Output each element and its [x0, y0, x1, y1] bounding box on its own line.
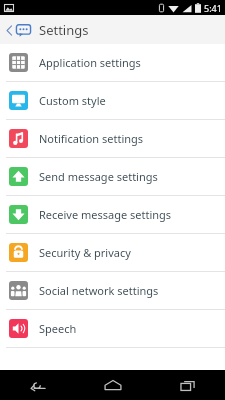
button[interactable]: Back: [0, 370, 75, 400]
staticText: Settings: [39, 21, 89, 39]
button[interactable]: Back: [0, 21, 225, 39]
button[interactable]: Application settings: [0, 44, 225, 81]
button[interactable]: Recent apps: [150, 370, 225, 400]
staticText: Send message settings: [39, 169, 158, 184]
staticText: Receive message settings: [39, 207, 172, 222]
staticText: Security & privacy: [39, 245, 131, 260]
button[interactable]: Home: [75, 370, 150, 400]
button[interactable]: Send message settings: [0, 158, 225, 195]
other: Back: [6, 25, 13, 36]
button[interactable]: Social network settings: [0, 272, 225, 309]
button[interactable]: Security & privacy: [0, 234, 225, 271]
staticText: Custom style: [39, 93, 106, 108]
staticText: 5:41: [204, 2, 222, 14]
button[interactable]: Custom style: [0, 82, 225, 119]
button[interactable]: Notification settings: [0, 120, 225, 157]
button[interactable]: Receive message settings: [0, 196, 225, 233]
staticText: Social network settings: [39, 283, 159, 298]
staticText: Application settings: [39, 55, 141, 70]
staticText: Speech: [39, 321, 77, 336]
button[interactable]: Speech: [0, 310, 225, 347]
staticText: Notification settings: [39, 131, 144, 146]
